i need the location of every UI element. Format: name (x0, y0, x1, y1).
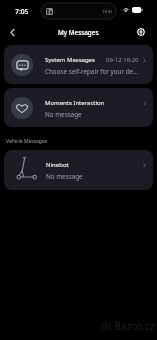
staticText: Vehicle Messages (6, 138, 48, 145)
button[interactable]: Settings (131, 23, 151, 41)
button[interactable]: Ninebot (4, 150, 153, 190)
staticText: @( Bazos.cz (100, 319, 155, 333)
staticText: Choose self-repair for your de… (45, 67, 139, 76)
staticText: 7:05 (15, 7, 29, 16)
staticText: Ninebot (46, 161, 69, 169)
button[interactable]: Back (2, 23, 22, 41)
button[interactable]: System Messages (4, 45, 153, 84)
staticText: No message (46, 172, 83, 181)
staticText: No message (45, 110, 82, 119)
staticText: System Messages (45, 56, 95, 64)
staticText: Moments Interaction (45, 99, 105, 107)
button[interactable]: Moments Interaction (4, 88, 153, 127)
staticText: 09-12 16:20 (106, 56, 139, 64)
staticText: My Messages (58, 28, 99, 37)
